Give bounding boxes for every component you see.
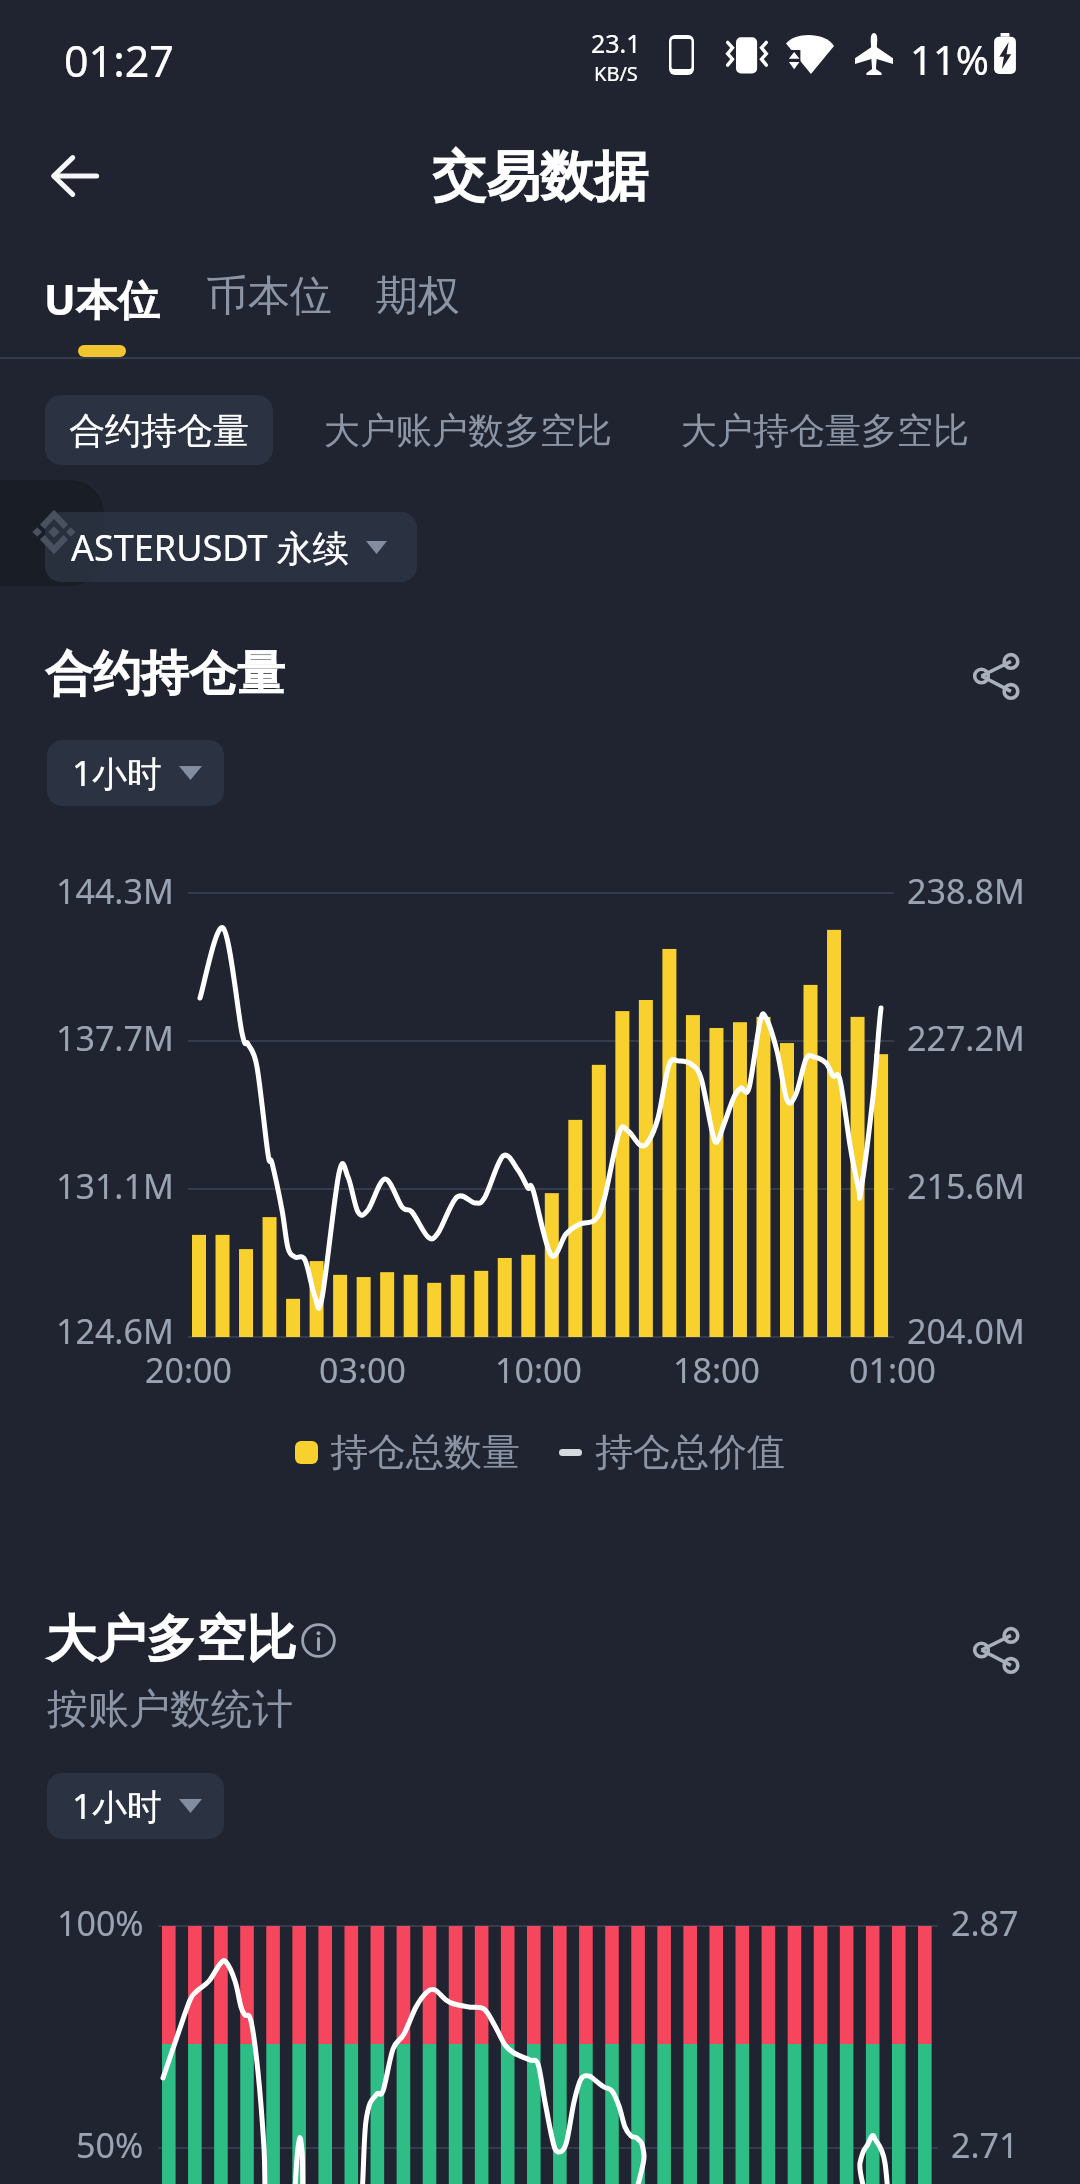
button[interactable]: Back	[28, 129, 122, 223]
staticText: 01:27	[64, 31, 174, 90]
button[interactable]: U本位	[44, 270, 160, 327]
staticText: U本位	[44, 270, 160, 327]
staticText: 227.2M	[907, 1015, 1025, 1061]
staticText: 大户持仓量多空比	[681, 408, 969, 453]
staticText: 按账户数统计	[47, 1684, 293, 1736]
staticText: KB/S	[594, 60, 638, 87]
staticText: 2.87	[951, 1900, 1019, 1946]
button[interactable]: ASTERUSDT 永续	[45, 512, 417, 582]
staticText: 124.6M	[56, 1308, 174, 1354]
staticText: 20:00	[145, 1347, 232, 1393]
staticText: 23.1	[591, 26, 641, 60]
button[interactable]: 合约持仓量	[45, 395, 273, 465]
button[interactable]: 大户账户数多空比	[324, 395, 612, 465]
staticText: 合约持仓量	[45, 644, 285, 704]
staticText: 1小时	[72, 1782, 163, 1830]
staticText: 137.7M	[56, 1015, 174, 1061]
button[interactable]: 大户持仓量多空比	[681, 395, 969, 465]
staticText: 大户多空比	[46, 1608, 296, 1671]
staticText: 131.1M	[56, 1163, 174, 1209]
button[interactable]: Share	[958, 1612, 1034, 1688]
staticText: 215.6M	[907, 1163, 1025, 1209]
staticText: 238.8M	[907, 868, 1025, 914]
button[interactable]: 1小时	[47, 1773, 224, 1839]
staticText: ASTERUSDT 永续	[71, 523, 349, 572]
button[interactable]: 币本位	[206, 270, 332, 323]
staticText: 2.71	[951, 2122, 1019, 2168]
staticText: 合约持仓量	[69, 408, 249, 453]
staticText: 18:00	[673, 1347, 760, 1393]
staticText: 100%	[57, 1900, 144, 1946]
button[interactable]: 1小时	[47, 740, 224, 806]
staticText: 03:00	[319, 1347, 406, 1393]
staticText: 11%	[910, 32, 989, 86]
staticText: 持仓总数量	[330, 1428, 520, 1476]
staticText: 50%	[76, 2122, 144, 2168]
staticText: 144.3M	[56, 868, 174, 914]
staticText: 期权	[376, 270, 460, 323]
staticText: 大户账户数多空比	[324, 408, 612, 453]
button[interactable]: 期权	[376, 270, 460, 323]
staticText: 204.0M	[907, 1308, 1025, 1354]
staticText: 10:00	[495, 1347, 582, 1393]
staticText: 持仓总价值	[595, 1428, 785, 1476]
button[interactable]: Info	[297, 1619, 339, 1661]
staticText: 01:00	[849, 1347, 936, 1393]
staticText: 交易数据	[432, 143, 648, 211]
staticText: 1小时	[72, 749, 163, 797]
button[interactable]: Share	[958, 638, 1034, 714]
staticText: 币本位	[206, 270, 332, 323]
